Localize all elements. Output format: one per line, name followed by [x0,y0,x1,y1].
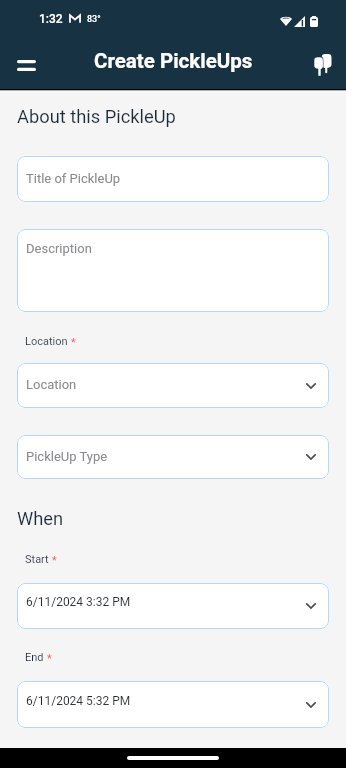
staticText: Description [26,241,92,256]
staticText: When [17,508,64,529]
staticText: 83° [87,14,101,25]
button[interactable]: Title of PickleUp [17,156,329,202]
staticText: * [47,652,52,665]
button[interactable]: 6/11/2024 5:32 PM [17,681,329,728]
button[interactable]: Description [17,229,329,312]
staticText: * [71,336,76,349]
button[interactable]: Location [17,363,329,408]
button[interactable]: Menu [8,47,44,83]
staticText: End [25,651,44,664]
button[interactable]: 6/11/2024 3:32 PM [17,583,329,629]
staticText: Create PickleUps [94,49,253,73]
staticText: * [52,554,57,567]
staticText: 6/11/2024 5:32 PM [26,694,131,708]
staticText: About this PickleUp [17,106,176,127]
button[interactable]: PickleUp Type [17,435,329,479]
staticText: 1:32 [39,12,63,26]
staticText: Location [25,335,68,348]
staticText: Start [25,553,49,566]
staticText: PickleUp Type [26,449,108,464]
staticText: 6/11/2024 3:32 PM [26,595,131,609]
staticText: Location [26,377,77,392]
staticText: Title of PickleUp [26,171,121,186]
button[interactable]: Pickleball paddles [305,47,341,83]
